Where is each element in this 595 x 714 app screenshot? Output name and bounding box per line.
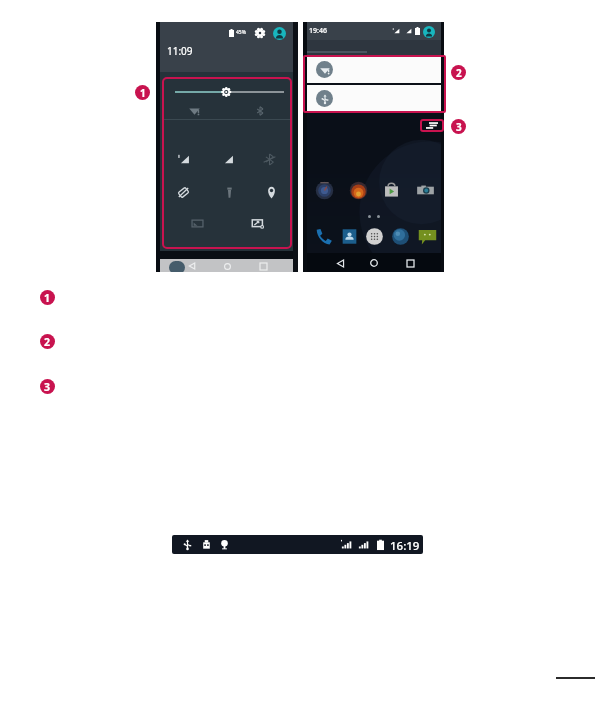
button[interactable]: Camera <box>415 180 436 201</box>
button[interactable]: Location <box>262 183 280 201</box>
button[interactable]: Clear all highlight <box>420 119 444 132</box>
button[interactable]: Home <box>221 260 233 272</box>
button[interactable]: Recents <box>403 256 417 270</box>
button[interactable]: Recents <box>257 260 269 272</box>
staticText: 11:09 <box>167 44 193 58</box>
button[interactable]: User profile <box>273 27 286 40</box>
button[interactable]: Brightness <box>170 85 288 99</box>
button[interactable]: Bluetooth <box>251 102 268 119</box>
button[interactable]: Mobile data SIM 2 <box>218 150 236 168</box>
button[interactable]: Weather <box>348 180 369 201</box>
button[interactable]: Messages <box>417 226 438 247</box>
button[interactable]: Screen share <box>188 214 206 232</box>
button[interactable]: Quick settings panel highlight <box>162 77 292 249</box>
button[interactable]: Phone <box>313 226 334 247</box>
staticText: 2 <box>44 335 51 349</box>
button[interactable]: Flashlight <box>220 183 238 201</box>
staticText: 1 <box>140 86 146 100</box>
button[interactable]: Callout 3 <box>40 379 55 394</box>
button[interactable]: Browser <box>390 226 411 247</box>
button[interactable]: Wi-Fi notification <box>305 56 443 83</box>
button[interactable]: Play Store <box>381 180 402 201</box>
button[interactable]: Callout 2 <box>40 334 55 349</box>
button[interactable]: Home <box>367 256 381 270</box>
button[interactable]: Screenshot <box>249 214 267 232</box>
button[interactable]: Contacts <box>339 226 360 247</box>
button[interactable]: All apps <box>364 226 385 247</box>
button[interactable]: Wi-Fi <box>186 102 203 119</box>
staticText: 19:46 <box>309 26 327 36</box>
button[interactable]: Clock <box>314 180 335 201</box>
button[interactable]: Callout 3 <box>451 119 466 134</box>
button[interactable]: Back <box>186 260 198 272</box>
button[interactable]: Mobile data SIM 1 <box>174 150 192 168</box>
button[interactable]: Back <box>333 256 347 270</box>
staticText: 16:19 <box>390 538 420 554</box>
button[interactable]: Notifications highlight <box>303 55 446 113</box>
button[interactable]: Callout 1 <box>135 85 150 100</box>
button[interactable]: Settings <box>254 27 266 39</box>
staticText: 3 <box>44 380 51 394</box>
button[interactable]: Callout 2 <box>451 65 466 80</box>
staticText: 1 <box>44 291 51 305</box>
button[interactable]: Bluetooth tethering <box>260 150 278 168</box>
staticText: 45% <box>236 29 246 36</box>
button[interactable]: Clear all notifications <box>421 120 442 131</box>
staticText: 3 <box>456 120 462 134</box>
staticText: 2 <box>456 66 462 80</box>
button[interactable]: User profile <box>423 26 435 38</box>
button[interactable]: Callout 1 <box>40 290 55 305</box>
button[interactable]: Auto-rotate <box>174 183 192 201</box>
button[interactable]: USB notification <box>305 85 443 112</box>
